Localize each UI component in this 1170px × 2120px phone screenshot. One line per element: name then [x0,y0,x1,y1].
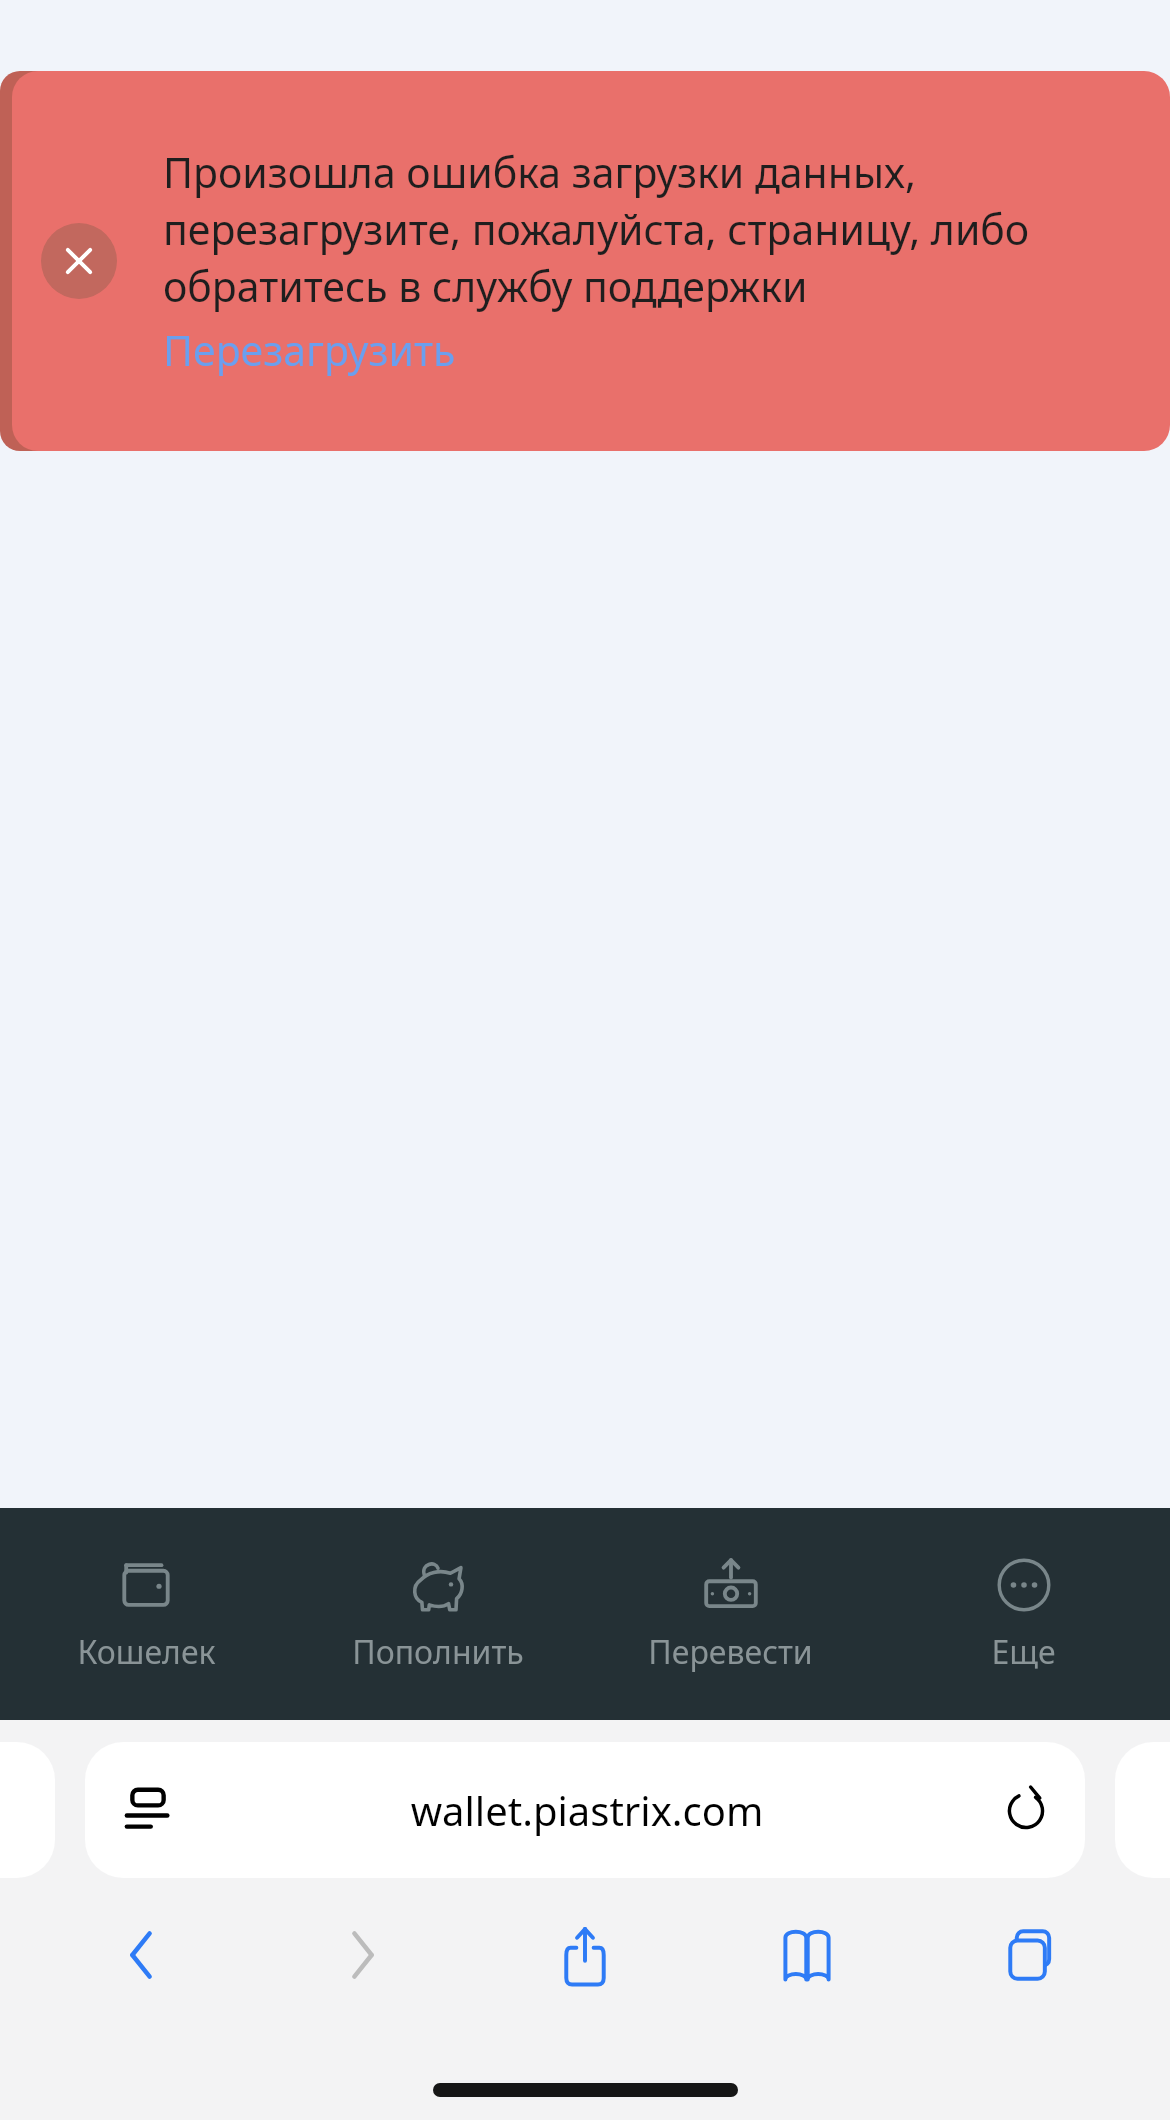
staticText: Пополнить [352,1630,524,1674]
button[interactable]: Еще [877,1508,1170,1720]
button[interactable]: Закрыть [41,223,117,299]
button[interactable]: Reader view [117,1779,179,1841]
staticText: wallet.piastrix.com [179,1783,995,1837]
button[interactable]: Forward [252,1900,474,2010]
button[interactable]: Reload [995,1779,1057,1841]
button[interactable]: Back [30,1900,252,2010]
button[interactable]: Перезагрузить [163,322,456,378]
button[interactable]: Перевести [584,1508,877,1720]
button[interactable]: Tabs [918,1900,1140,2010]
staticText: Кошелек [77,1630,216,1674]
button[interactable]: Кошелек [0,1508,292,1720]
button[interactable]: Пополнить [292,1508,584,1720]
staticText: Перевести [648,1630,813,1674]
button[interactable]: Share [474,1900,696,2010]
staticText: Перезагрузить [163,322,456,378]
button[interactable]: Reader view [85,1742,1085,1878]
staticText: Произошла ошибка загрузки данных, переза… [163,144,1156,314]
staticText: Еще [991,1630,1056,1674]
button[interactable]: Bookmarks [696,1900,918,2010]
